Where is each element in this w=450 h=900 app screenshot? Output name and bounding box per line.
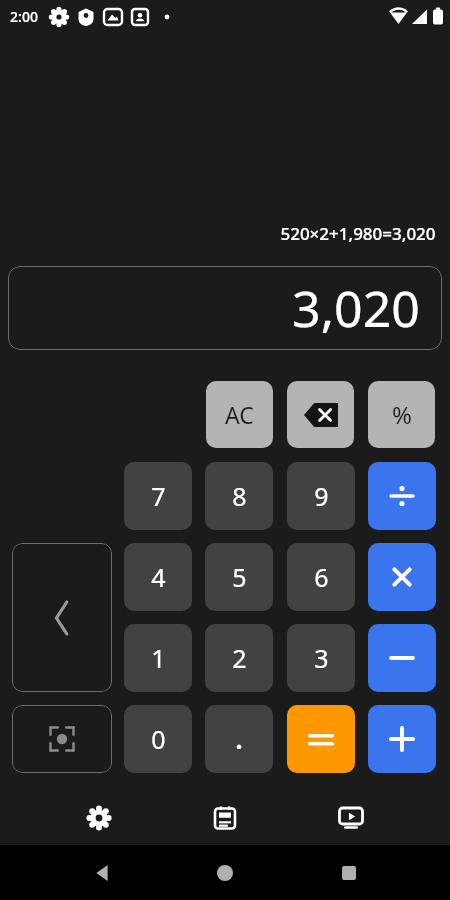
button[interactable]: Previous: [12, 543, 112, 692]
button[interactable]: Back: [80, 851, 124, 895]
staticText: 3: [314, 641, 329, 675]
button[interactable]: .: [205, 705, 273, 773]
button[interactable]: Scan: [12, 705, 112, 773]
button[interactable]: 3: [287, 624, 355, 692]
staticText: %: [392, 398, 412, 431]
staticText: .: [235, 722, 243, 756]
button[interactable]: %: [368, 381, 435, 448]
button[interactable]: Multiply: [368, 543, 436, 611]
staticText: 5: [232, 560, 247, 594]
button[interactable]: 2: [205, 624, 273, 692]
button[interactable]: 8: [205, 462, 273, 530]
button[interactable]: Home: [203, 851, 247, 895]
staticText: 1: [151, 641, 166, 675]
button[interactable]: Recents: [327, 851, 371, 895]
staticText: 3,020: [292, 274, 420, 342]
staticText: 2:00: [10, 7, 38, 26]
button[interactable]: 4: [124, 543, 192, 611]
staticText: 0: [151, 722, 166, 756]
staticText: 2: [232, 641, 247, 675]
staticText: 520×2+1,980=3,020: [280, 222, 436, 245]
button[interactable]: 7: [124, 462, 192, 530]
button[interactable]: 6: [287, 543, 355, 611]
button[interactable]: Backspace: [287, 381, 354, 448]
button[interactable]: Videos: [324, 791, 378, 845]
button[interactable]: Settings: [72, 791, 126, 845]
staticText: AC: [225, 399, 254, 430]
staticText: 8: [232, 479, 247, 513]
button[interactable]: Add: [368, 705, 436, 773]
button[interactable]: AC: [206, 381, 273, 448]
staticText: 6: [314, 560, 329, 594]
button[interactable]: 1: [124, 624, 192, 692]
button[interactable]: 3,020: [8, 266, 442, 350]
staticText: 4: [151, 560, 166, 594]
button[interactable]: Equals: [287, 705, 355, 773]
button[interactable]: Subtract: [368, 624, 436, 692]
button[interactable]: 5: [205, 543, 273, 611]
button[interactable]: 9: [287, 462, 355, 530]
button[interactable]: History: [198, 791, 252, 845]
staticText: 7: [151, 479, 166, 513]
button[interactable]: Divide: [368, 462, 436, 530]
staticText: 9: [314, 479, 329, 513]
button[interactable]: 0: [124, 705, 192, 773]
